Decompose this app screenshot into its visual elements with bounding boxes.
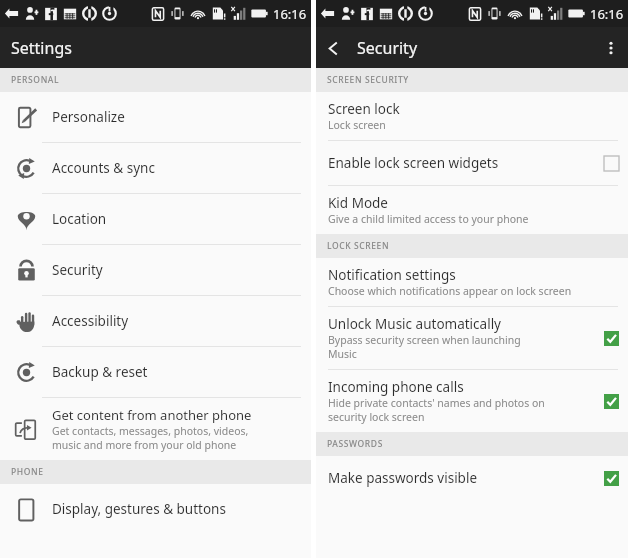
button[interactable]: Backup & reset: [0, 347, 311, 397]
staticText: Backup & reset: [52, 363, 148, 381]
staticText: Hide private contacts' names and photos …: [328, 396, 545, 424]
staticText: Notification settings: [328, 266, 456, 284]
staticText: Lock screen: [328, 118, 386, 132]
staticText: Get content from another phone: [52, 406, 252, 424]
button[interactable]: Unlock Music automatically: [316, 307, 628, 369]
staticText: Bypass security screen when launching Mu…: [328, 333, 521, 361]
button[interactable]: More options: [594, 31, 628, 65]
staticText: Make passwords visible: [328, 469, 478, 487]
button[interactable]: Kid Mode: [316, 186, 628, 234]
staticText: Incoming phone calls: [328, 378, 464, 396]
staticText: PHONE: [11, 466, 44, 478]
staticText: Get contacts, messages, photos, videos, …: [52, 424, 249, 452]
staticText: PERSONAL: [11, 74, 60, 86]
staticText: SCREEN SECURITY: [327, 74, 409, 86]
button[interactable]: Notification settings: [316, 258, 628, 306]
staticText: Kid Mode: [328, 194, 388, 212]
staticText: Choose which notifications appear on loc…: [328, 284, 572, 298]
button[interactable]: Enable lock screen widgets: [316, 141, 628, 185]
staticText: Accessibility: [52, 312, 129, 330]
staticText: Location: [52, 210, 107, 228]
staticText: Screen lock: [328, 100, 400, 118]
button[interactable]: Back: [316, 31, 350, 65]
staticText: Accounts & sync: [52, 159, 155, 177]
button[interactable]: Incoming phone calls: [316, 370, 628, 432]
staticText: Enable lock screen widgets: [328, 154, 499, 172]
button[interactable]: Security: [0, 245, 311, 295]
staticText: Personalize: [52, 108, 125, 126]
button[interactable]: Location: [0, 194, 311, 244]
button[interactable]: Screen lock: [316, 92, 628, 140]
staticText: Security: [52, 261, 103, 279]
staticText: Give a child limited access to your phon…: [328, 212, 529, 226]
staticText: 16:16: [590, 5, 624, 23]
staticText: 16:16: [273, 5, 307, 23]
staticText: LOCK SCREEN: [327, 240, 390, 252]
staticText: PASSWORDS: [327, 438, 383, 450]
button[interactable]: Accounts & sync: [0, 143, 311, 193]
button[interactable]: Make passwords visible: [316, 456, 628, 500]
staticText: Security: [357, 37, 418, 59]
staticText: Display, gestures & buttons: [52, 500, 226, 518]
staticText: Unlock Music automatically: [328, 315, 502, 333]
button[interactable]: Get content from another phone: [0, 398, 311, 460]
staticText: Settings: [11, 37, 72, 59]
button[interactable]: Accessibility: [0, 296, 311, 346]
button[interactable]: Personalize: [0, 92, 311, 142]
button[interactable]: Display, gestures & buttons: [0, 484, 311, 534]
